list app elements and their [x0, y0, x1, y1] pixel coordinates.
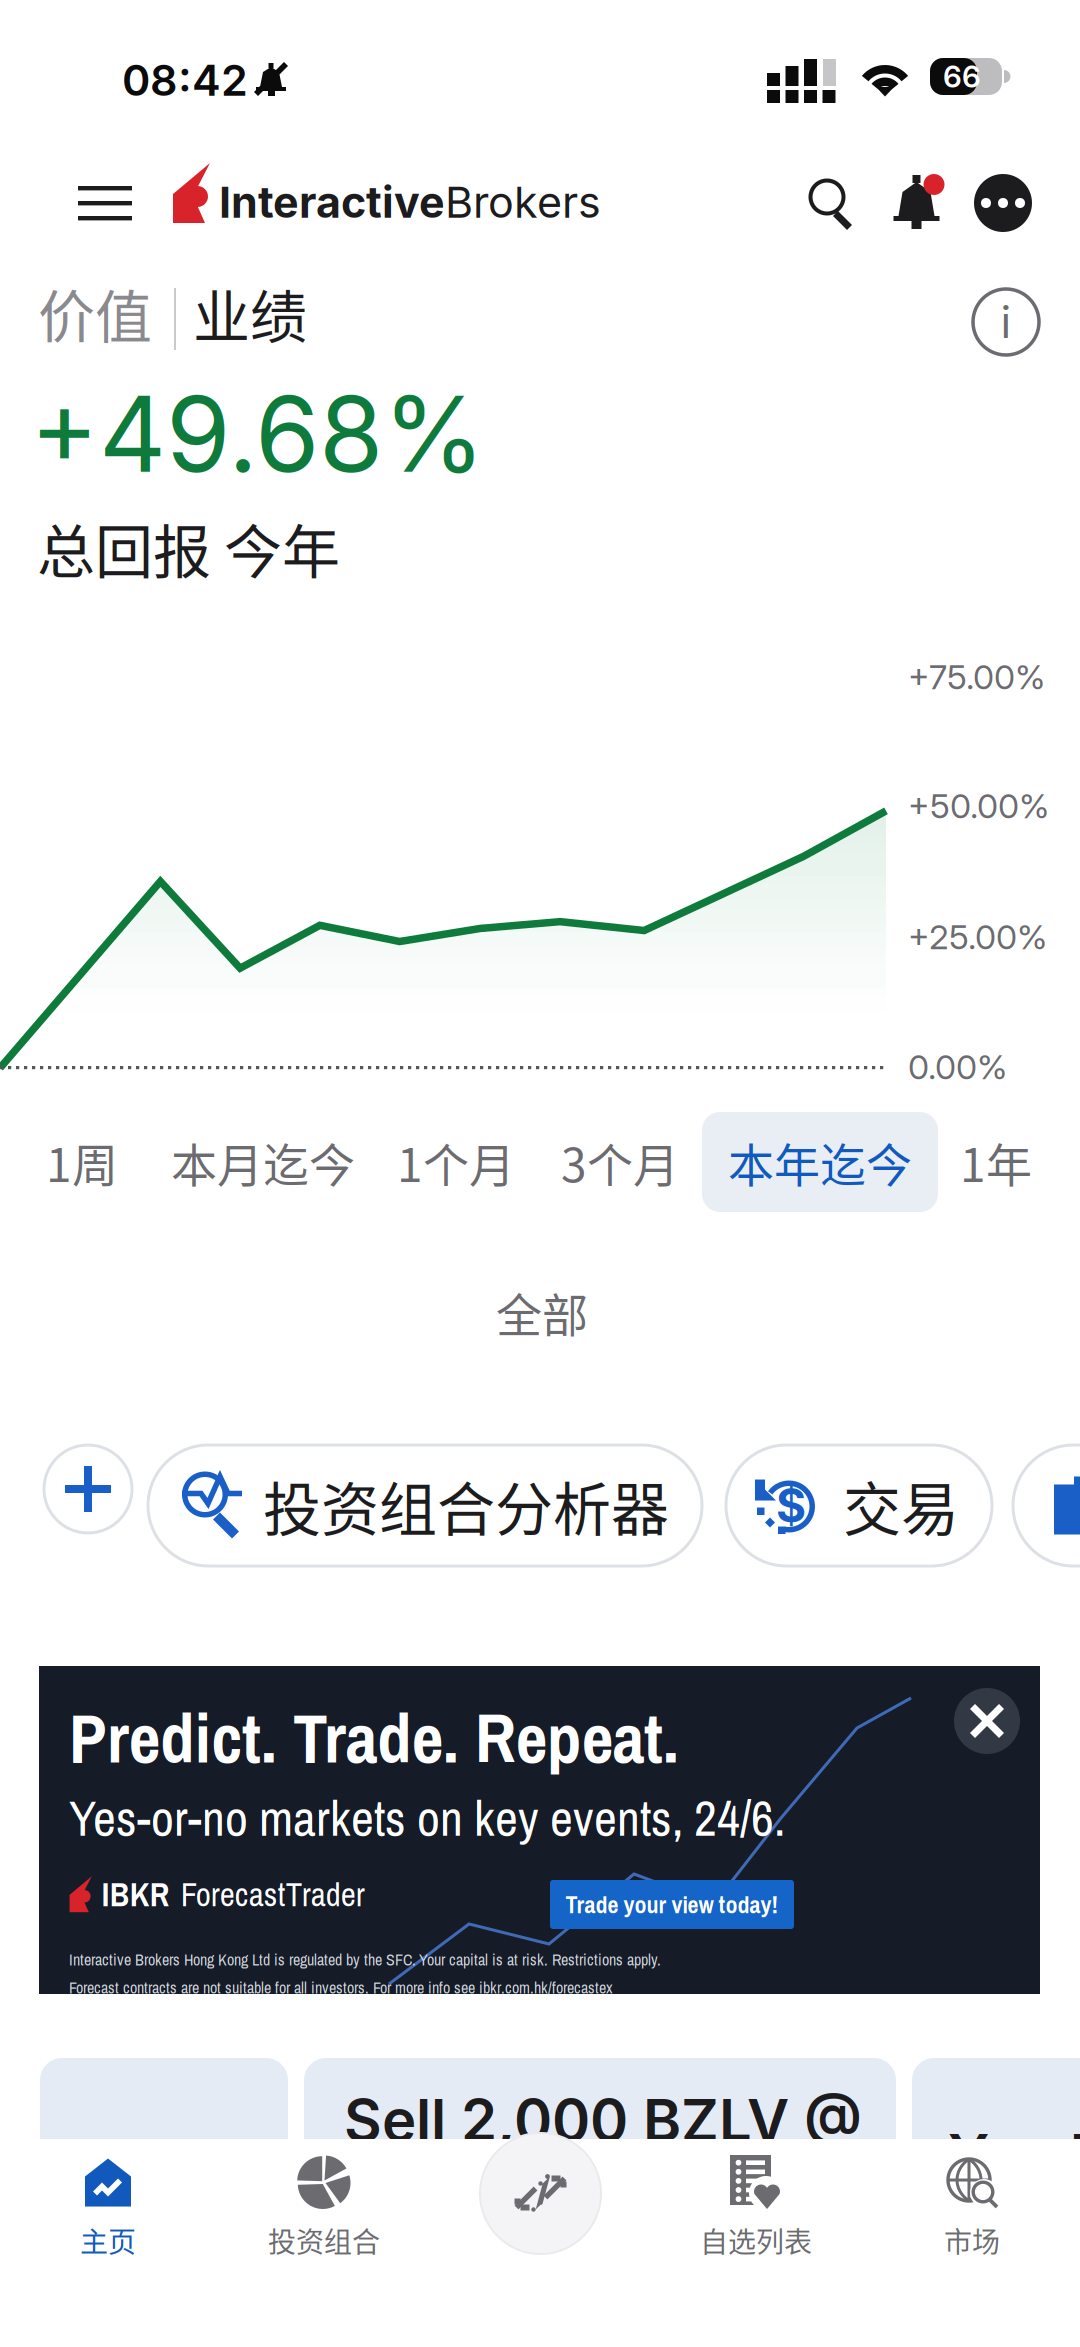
staticText: i: [1000, 295, 1011, 349]
staticText: IBKR: [102, 1872, 170, 1916]
staticText: 1个月: [397, 1129, 515, 1195]
staticText: Yes-or-no markets on key events, 24/6.: [69, 1784, 785, 1851]
button[interactable]: 市场: [864, 2139, 1080, 2346]
staticText: Brokers: [445, 176, 601, 228]
button[interactable]: 自选列表: [648, 2139, 864, 2346]
staticText: 本年迄今: [728, 1129, 912, 1195]
staticText: 66: [943, 58, 981, 95]
staticText: Sell 2,000 BZLV @ 4.60: [344, 2085, 862, 2225]
button[interactable]: 本年迄今: [702, 1112, 938, 1212]
staticText: You ha: [948, 2120, 1080, 2190]
staticText: $: [776, 1478, 806, 1533]
button[interactable]: Add: [44, 1445, 132, 1533]
staticText: 3个月: [561, 1129, 679, 1195]
staticText: 自选列表: [700, 2220, 812, 2260]
staticText: 交易: [843, 1463, 959, 1547]
button[interactable]: Information: [972, 288, 1040, 356]
staticText: Interactive: [219, 176, 445, 228]
button[interactable]: 主页: [0, 2139, 216, 2346]
staticText: 1年: [960, 1129, 1032, 1195]
staticText: 全部: [496, 1279, 588, 1345]
button[interactable]: 3个月: [544, 1112, 696, 1212]
button[interactable]: Menu: [52, 150, 158, 256]
button[interactable]: More: [974, 174, 1032, 232]
staticText: 主页: [80, 2220, 136, 2260]
button[interactable]: Search: [806, 176, 856, 234]
staticText: Forecast contracts are not suitable for …: [69, 1977, 613, 1999]
button[interactable]: 投资组合分析器: [148, 1445, 702, 1566]
staticText: +50.00%: [908, 785, 1049, 826]
staticText: 08:42: [122, 54, 248, 106]
staticText: 总回报 今年: [37, 506, 340, 590]
button[interactable]: 1周: [22, 1112, 142, 1212]
staticText: ForecastTrader: [181, 1872, 365, 1916]
staticText: 价值: [38, 272, 152, 354]
button[interactable]: 1个月: [380, 1112, 532, 1212]
button[interactable]: 转账: [1013, 1445, 1080, 1566]
button[interactable]: 投资组合: [216, 2139, 432, 2346]
staticText: +75.00%: [908, 656, 1045, 697]
button[interactable]: Trade your view today!: [550, 1880, 794, 1929]
button[interactable]: 业绩: [193, 277, 323, 349]
button[interactable]: 本月迄今: [157, 1112, 369, 1212]
button[interactable]: Notifications: [890, 172, 943, 232]
button[interactable]: 价值: [38, 277, 168, 349]
staticText: Trade your view today!: [565, 1888, 778, 1921]
staticText: Interactive Brokers Hong Kong Ltd is reg…: [69, 1949, 661, 1971]
staticText: +49.68%: [30, 371, 485, 497]
button[interactable]: [432, 2139, 648, 2346]
button[interactable]: 全部: [442, 1262, 642, 1362]
staticText: 本月迄今: [171, 1129, 355, 1195]
staticText: 业绩: [193, 272, 307, 354]
staticText: 市场: [944, 2220, 1000, 2260]
staticText: 1周: [46, 1129, 118, 1195]
staticText: Predict. Trade. Repeat.: [69, 1691, 679, 1784]
staticText: 投资组合分析器: [263, 1463, 669, 1547]
button[interactable]: Close: [954, 1688, 1020, 1754]
button[interactable]: $: [726, 1445, 992, 1566]
staticText: 投资组合: [268, 2220, 380, 2260]
staticText: +25.00%: [908, 916, 1047, 957]
button[interactable]: Scan: [480, 2133, 601, 2254]
button[interactable]: 1年: [940, 1112, 1052, 1212]
staticText: 0.00%: [908, 1046, 1007, 1087]
